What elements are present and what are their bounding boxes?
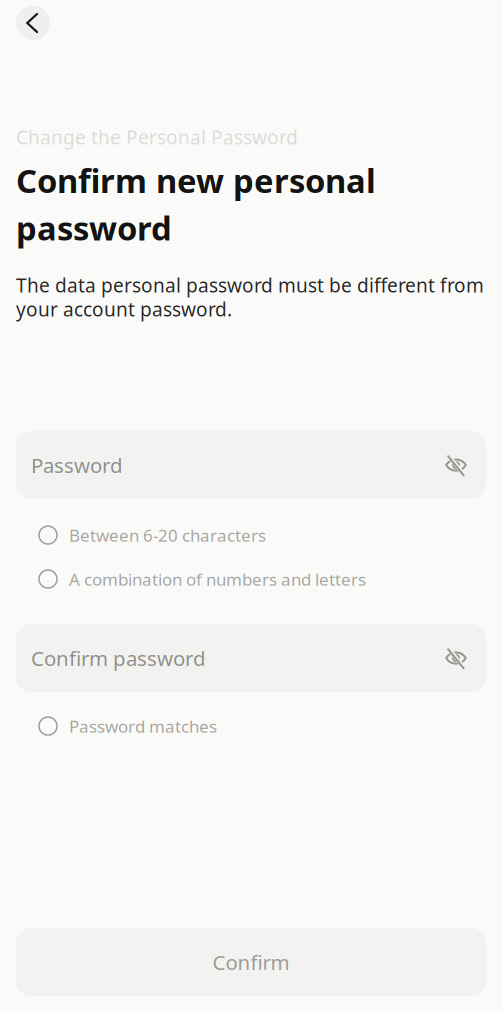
staticText: your account password. xyxy=(16,296,232,322)
staticText: Between 6-20 characters xyxy=(69,523,266,547)
button[interactable]: Confirm xyxy=(16,928,486,996)
staticText: password xyxy=(16,206,172,250)
staticText: Change the Personal Password xyxy=(16,124,298,150)
button[interactable]: Show Password xyxy=(434,443,478,487)
staticText: Password matches xyxy=(69,714,217,738)
staticText: The data personal password must be diffe… xyxy=(16,272,484,298)
staticText: Confirm password xyxy=(31,644,206,672)
staticText: A combination of numbers and letters xyxy=(69,567,366,591)
staticText: Password xyxy=(31,451,123,479)
staticText: Confirm xyxy=(212,948,289,976)
staticText: Confirm new personal xyxy=(16,158,376,203)
button[interactable]: Show Confirm password xyxy=(434,636,478,680)
button[interactable]: Back xyxy=(16,6,50,40)
